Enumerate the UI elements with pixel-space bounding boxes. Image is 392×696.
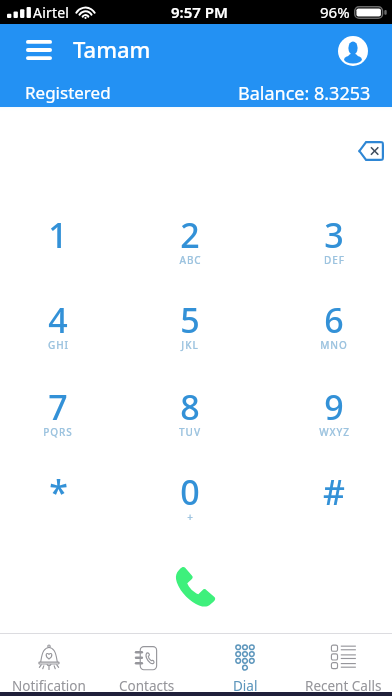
staticText: 7 [48, 384, 68, 430]
button[interactable]: 6 [278, 283, 390, 363]
button[interactable]: 9 [278, 370, 390, 450]
button[interactable]: 0 [134, 455, 246, 535]
staticText: Airtel [33, 3, 70, 22]
staticText: TUV [179, 425, 201, 439]
staticText: JKL [181, 338, 199, 352]
staticText: 9 [324, 384, 344, 430]
button[interactable]: 3 [278, 198, 390, 278]
button[interactable]: Account [334, 31, 372, 69]
staticText: DEF [324, 253, 345, 267]
staticText: 5 [180, 297, 200, 343]
staticText: Tamam [73, 34, 151, 64]
button[interactable]: Dial [196, 634, 294, 692]
staticText: + [187, 510, 194, 524]
staticText: 1 [48, 212, 68, 258]
button[interactable]: * [2, 455, 114, 535]
staticText: * [49, 469, 68, 515]
staticText: 0 [180, 469, 200, 515]
staticText: Contacts [119, 677, 175, 695]
button[interactable]: Contacts [98, 634, 196, 692]
staticText: Notification [12, 677, 86, 695]
button[interactable]: 5 [134, 283, 246, 363]
button[interactable]: Call [165, 555, 227, 617]
staticText: 96% [320, 2, 350, 22]
staticText: 2 [180, 212, 200, 258]
staticText: # [323, 469, 345, 515]
staticText: MNO [320, 338, 348, 352]
staticText: 4 [48, 297, 68, 343]
staticText: Dial [233, 677, 258, 695]
staticText: 3 [324, 212, 344, 258]
button[interactable]: 8 [134, 370, 246, 450]
button[interactable]: 1 [2, 198, 114, 278]
button[interactable]: 4 [2, 283, 114, 363]
staticText: Balance: 8.3253 [238, 81, 371, 106]
button[interactable]: Recent Calls [294, 634, 392, 692]
staticText: GHI [48, 338, 69, 352]
staticText: ABC [179, 253, 202, 267]
button[interactable]: Backspace [349, 129, 392, 173]
staticText: PQRS [43, 425, 73, 439]
staticText: Recent Calls [305, 677, 382, 695]
button[interactable]: Notification [0, 634, 98, 692]
staticText: 9:57 PM [171, 2, 228, 22]
staticText: 8 [180, 384, 200, 430]
button[interactable]: Menu [15, 26, 63, 74]
button[interactable]: 2 [134, 198, 246, 278]
staticText: 6 [324, 297, 344, 343]
button[interactable]: 7 [2, 370, 114, 450]
staticText: Registered [25, 81, 111, 104]
staticText: WXYZ [319, 425, 350, 439]
button[interactable]: # [278, 455, 390, 535]
